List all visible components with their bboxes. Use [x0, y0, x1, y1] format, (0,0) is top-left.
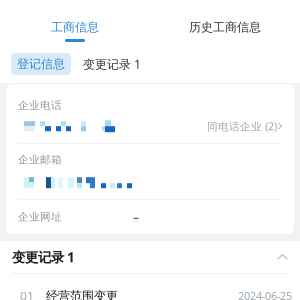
staticText: 经营范围变更: [46, 289, 118, 300]
staticText: –: [133, 209, 139, 225]
staticText: 历史工商信息: [189, 20, 261, 35]
button[interactable]: 变更记录 1: [0, 241, 300, 273]
button[interactable]: 01: [0, 274, 300, 300]
staticText: 企业邮箱: [18, 153, 62, 166]
staticText: 变更记录 1: [12, 248, 75, 266]
button[interactable]: 变更记录 1: [76, 53, 148, 75]
staticText: 登记信息: [17, 57, 65, 71]
staticText: 企业电话: [18, 99, 62, 112]
staticText: 变更记录 1: [83, 56, 141, 72]
button[interactable]: 工商信息: [0, 0, 150, 46]
button[interactable]: 同电话企业 (2): [207, 119, 282, 133]
staticText: 2024-06-25: [238, 289, 292, 300]
staticText: 同电话企业 (2): [207, 119, 277, 133]
button[interactable]: 登记信息: [11, 53, 71, 75]
staticText: 工商信息: [51, 20, 99, 35]
staticText: 01: [20, 288, 34, 300]
staticText: 企业网址: [18, 210, 62, 223]
button[interactable]: 历史工商信息: [150, 0, 300, 46]
